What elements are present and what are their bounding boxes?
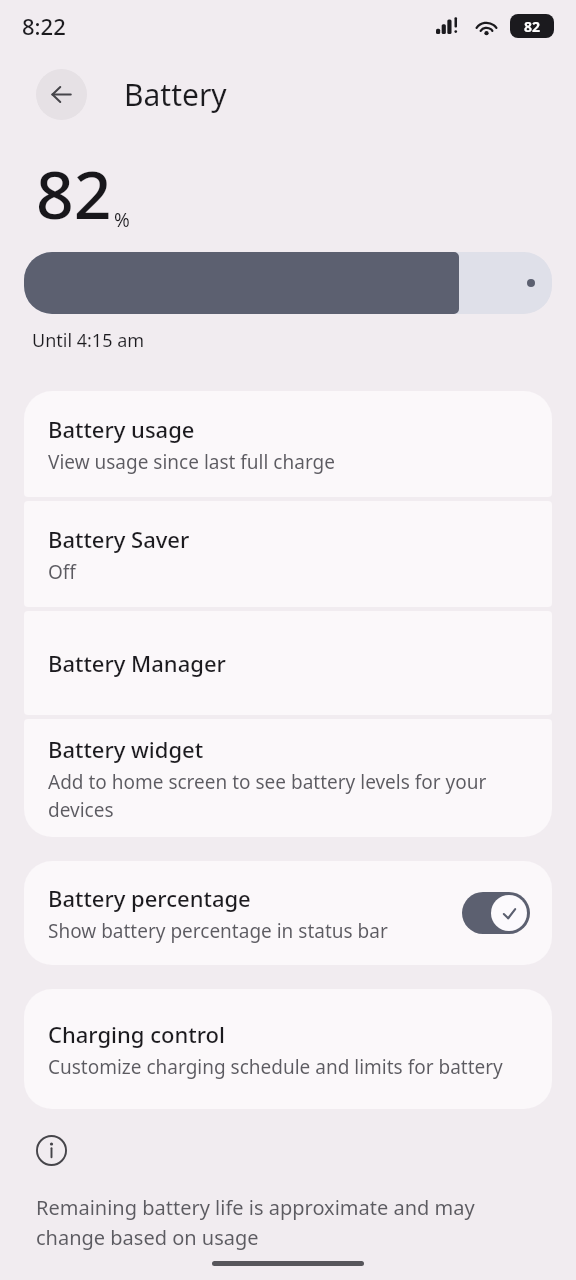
staticText: Remaining battery life is approximate an…	[36, 1194, 548, 1251]
staticText: %	[114, 207, 130, 233]
staticText: Battery Saver	[48, 524, 190, 554]
button[interactable]: Battery percentage	[24, 861, 552, 965]
staticText: Battery	[124, 74, 227, 115]
staticText: Charging control	[48, 1019, 225, 1049]
button[interactable]: Battery widget	[24, 719, 552, 837]
staticText: Until 4:15 am	[32, 328, 145, 353]
staticText: 82	[36, 148, 112, 238]
staticText: Off	[48, 559, 76, 585]
button[interactable]: Battery Saver	[24, 501, 552, 607]
button[interactable]: Battery percentage toggle	[462, 892, 530, 934]
staticText: Battery widget	[48, 734, 204, 764]
staticText: Battery usage	[48, 414, 195, 444]
staticText: View usage since last full charge	[48, 449, 335, 475]
staticText: Battery percentage	[48, 883, 251, 913]
button[interactable]: Battery Manager	[24, 611, 552, 715]
staticText: Add to home screen to see battery levels…	[48, 769, 528, 823]
staticText: Battery Manager	[48, 648, 226, 678]
staticText: Customize charging schedule and limits f…	[48, 1054, 503, 1080]
staticText: 82	[524, 17, 541, 36]
button[interactable]: Back	[36, 69, 87, 120]
button[interactable]: Battery usage	[24, 391, 552, 497]
button[interactable]: Charging control	[24, 989, 552, 1109]
staticText: Show battery percentage in status bar	[48, 918, 388, 944]
staticText: 8:22	[22, 11, 66, 41]
